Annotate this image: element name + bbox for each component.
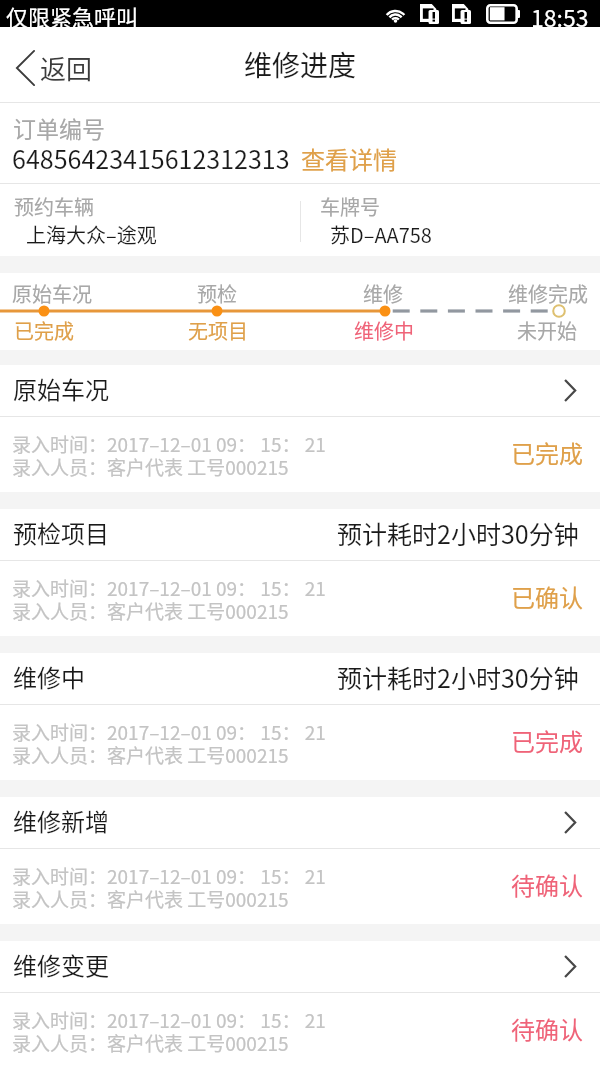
staticText: 18:53 bbox=[531, 0, 589, 27]
other: 查看详情 bbox=[565, 812, 576, 833]
other: 查看详情 bbox=[565, 380, 576, 401]
button[interactable]: 预检项目 bbox=[0, 509, 600, 560]
staticText: 维修中 bbox=[314, 316, 454, 345]
staticText: 维修 bbox=[313, 279, 453, 308]
staticText: 苏D–AA758 bbox=[330, 220, 432, 249]
button[interactable]: 录入时间：2017–12–01 09： 15： 21 bbox=[0, 561, 600, 636]
button[interactable]: 录入时间：2017–12–01 09： 15： 21 bbox=[0, 417, 600, 492]
staticText: 录入时间：2017–12–01 09： 15： 21 bbox=[12, 718, 326, 746]
staticText: 录入时间：2017–12–01 09： 15： 21 bbox=[12, 1006, 326, 1034]
staticText: 查看详情 bbox=[301, 141, 397, 176]
staticText: 待确认 bbox=[511, 1011, 583, 1046]
staticText: 原始车况 bbox=[0, 279, 122, 308]
staticText: 录入人员：客户代表 工号000215 bbox=[12, 885, 289, 913]
staticText: 待确认 bbox=[511, 867, 583, 902]
staticText: 已确认 bbox=[511, 579, 583, 614]
staticText: 维修进度 bbox=[244, 44, 357, 85]
staticText: 预计耗时2小时30分钟 bbox=[337, 515, 579, 551]
button[interactable]: 原始车况 bbox=[0, 365, 600, 416]
button[interactable]: 录入时间：2017–12–01 09： 15： 21 bbox=[0, 849, 600, 924]
staticText: 录入时间：2017–12–01 09： 15： 21 bbox=[12, 574, 326, 602]
staticText: 维修变更 bbox=[13, 947, 109, 982]
staticText: 已完成 bbox=[511, 435, 583, 470]
staticText: 录入人员：客户代表 工号000215 bbox=[12, 597, 289, 625]
staticText: 录入人员：客户代表 工号000215 bbox=[12, 741, 289, 769]
button[interactable]: 维修变更 bbox=[0, 941, 600, 992]
staticText: 维修完成 bbox=[478, 279, 600, 308]
staticText: 订单编号 bbox=[13, 111, 105, 144]
staticText: 录入时间：2017–12–01 09： 15： 21 bbox=[12, 430, 326, 458]
staticText: 上海大众–途观 bbox=[26, 220, 157, 249]
staticText: 维修中 bbox=[13, 659, 85, 694]
staticText: 车牌号 bbox=[320, 192, 380, 221]
staticText: 返回 bbox=[40, 49, 93, 87]
staticText: 维修新增 bbox=[13, 803, 109, 838]
button[interactable]: 维修新增 bbox=[0, 797, 600, 848]
staticText: 预计耗时2小时30分钟 bbox=[337, 659, 579, 695]
staticText: 无项目 bbox=[148, 316, 288, 345]
staticText: 录入时间：2017–12–01 09： 15： 21 bbox=[12, 862, 326, 890]
staticText: 未开始 bbox=[477, 316, 600, 345]
staticText: 64856423415612312313 bbox=[12, 140, 290, 176]
staticText: 预检 bbox=[147, 279, 287, 308]
button[interactable]: 录入时间：2017–12–01 09： 15： 21 bbox=[0, 705, 600, 780]
staticText: 录入人员：客户代表 工号000215 bbox=[12, 1029, 289, 1057]
staticText: 预约车辆 bbox=[14, 192, 94, 221]
button[interactable]: 维修中 bbox=[0, 653, 600, 704]
button[interactable]: 录入时间：2017–12–01 09： 15： 21 bbox=[0, 993, 600, 1067]
staticText: 已完成 bbox=[0, 316, 114, 345]
button[interactable]: 查看详情 bbox=[301, 141, 397, 176]
staticText: 原始车况 bbox=[13, 371, 109, 406]
button[interactable]: 返回 bbox=[0, 37, 109, 93]
staticText: 已完成 bbox=[511, 723, 583, 758]
other: 查看详情 bbox=[565, 956, 576, 977]
staticText: 预检项目 bbox=[13, 515, 109, 550]
staticText: 录入人员：客户代表 工号000215 bbox=[12, 453, 289, 481]
staticText: 仅限紧急呼叫 bbox=[6, 0, 139, 27]
